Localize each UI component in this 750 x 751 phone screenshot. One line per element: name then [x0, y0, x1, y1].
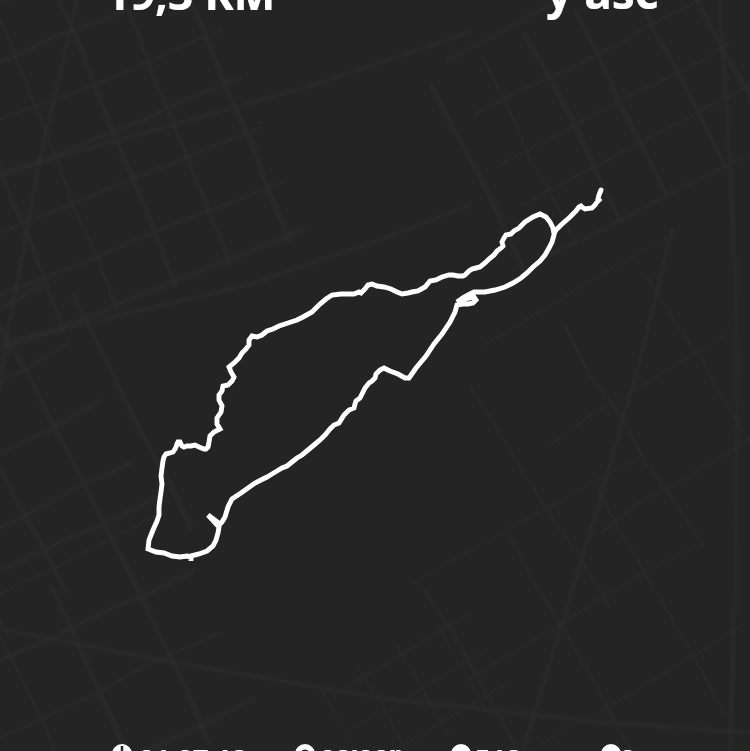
button[interactable]: Activity route map [0, 0, 750, 751]
button[interactable]: y asc [510, 0, 690, 14]
staticText: 19,3 KM [105, 0, 276, 23]
staticText: 01:07:18 [139, 740, 247, 751]
staticText: 518 [475, 740, 522, 751]
staticText: y asc [546, 0, 659, 22]
button[interactable]: 19,3 KM [66, 0, 326, 18]
staticText: 08'00" [320, 740, 402, 751]
staticText: 0 [620, 740, 636, 751]
